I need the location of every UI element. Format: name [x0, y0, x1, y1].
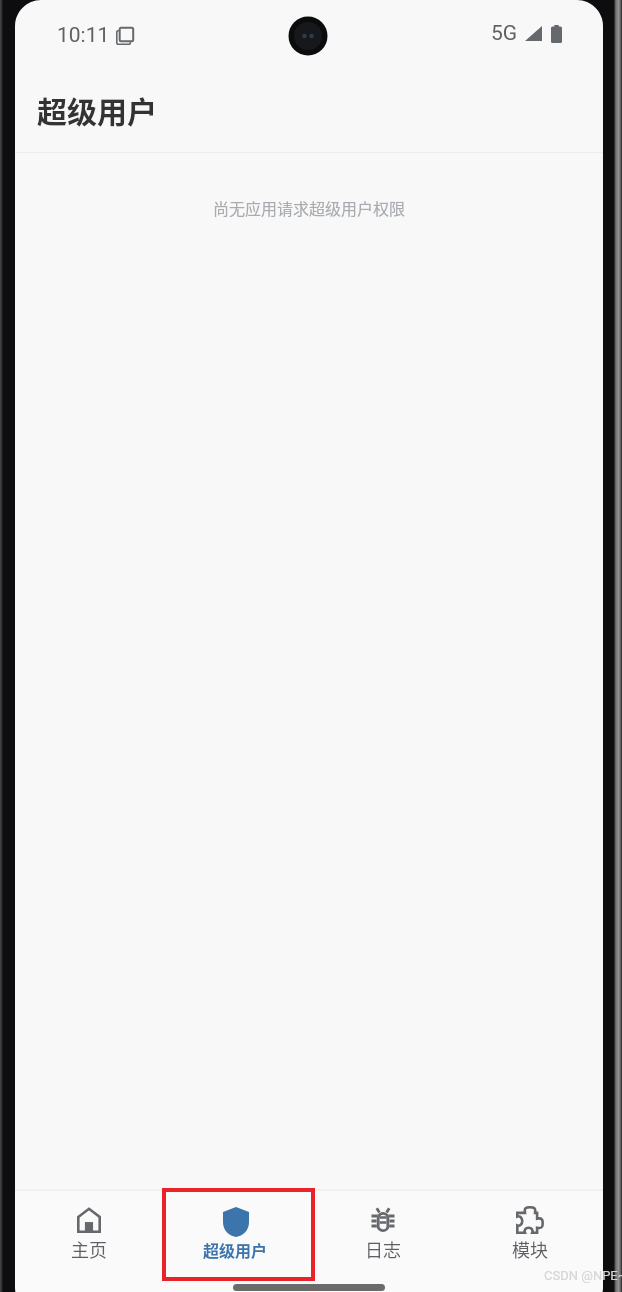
- staticText: CSDN @NPE~: [544, 1268, 622, 1283]
- staticText: 尚无应用请求超级用户权限: [213, 196, 406, 219]
- button[interactable]: Modules: [456, 1191, 603, 1277]
- button[interactable]: Superuser: [162, 1191, 309, 1277]
- staticText: 主页: [71, 1236, 107, 1262]
- staticText: 超级用户: [203, 1238, 268, 1261]
- staticText: 模块: [512, 1236, 548, 1262]
- staticText: 超级用户: [37, 88, 157, 131]
- staticText: 10:11: [57, 23, 110, 48]
- button[interactable]: Home: [15, 1191, 162, 1277]
- staticText: 日志: [365, 1236, 401, 1262]
- button[interactable]: Logs: [309, 1191, 456, 1277]
- staticText: 5G: [491, 21, 518, 46]
